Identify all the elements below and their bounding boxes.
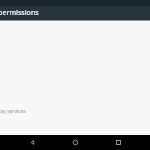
button[interactable]: Google Play services xyxy=(0,105,150,117)
button[interactable]: Home xyxy=(64,135,86,150)
button[interactable]: Back xyxy=(21,135,43,150)
button[interactable]: Recents xyxy=(107,135,129,150)
staticText: Google Play services xyxy=(0,108,26,115)
staticText: App permissions xyxy=(0,8,39,18)
